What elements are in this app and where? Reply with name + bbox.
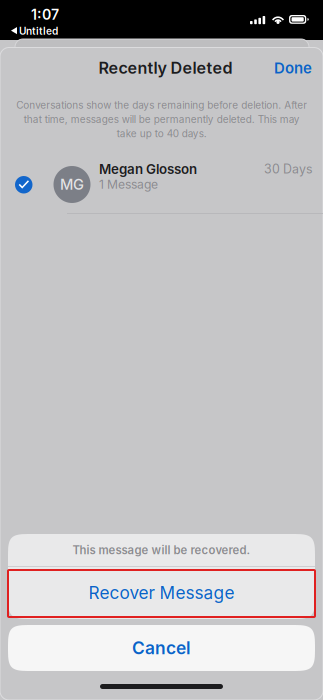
staticText: Recently Deleted: [98, 58, 232, 78]
staticText: This message will be recovered.: [72, 543, 250, 557]
staticText: 1 Message: [99, 177, 158, 192]
staticText: Megan Glosson: [99, 161, 197, 177]
button[interactable]: Done: [262, 59, 312, 77]
button[interactable]: Recover Message: [8, 567, 315, 619]
staticText: Conversations show the days remaining be…: [16, 99, 307, 140]
staticText: 30 Days: [264, 161, 313, 176]
staticText: Untitled: [19, 25, 58, 37]
staticText: 1:07: [31, 6, 59, 23]
staticText: MG: [60, 176, 84, 193]
staticText: Recover Message: [88, 582, 234, 603]
staticText: Cancel: [132, 637, 191, 658]
staticText: Done: [274, 59, 312, 77]
button[interactable]: Cancel: [8, 625, 315, 671]
